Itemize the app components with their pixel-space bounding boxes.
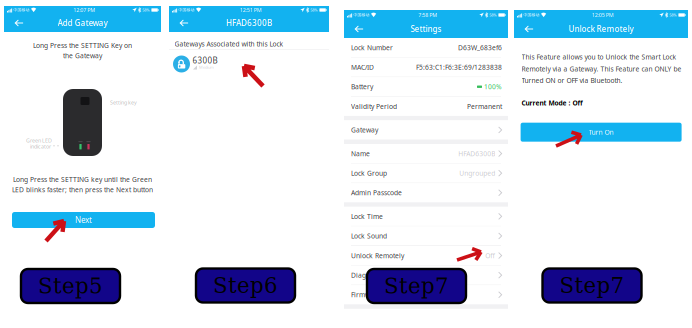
staticText: 58%: [142, 7, 149, 13]
staticText: Admin Passcode: [351, 188, 402, 197]
staticText: Medium: [199, 64, 214, 70]
staticText: Name: [351, 149, 370, 158]
staticText: indicator: [30, 143, 51, 150]
staticText: 12:51 PM: [240, 6, 262, 14]
staticText: Gateways Associated with this Lock: [174, 39, 283, 48]
staticText: Setting key: [110, 99, 137, 106]
staticText: Step6: [213, 273, 278, 298]
staticText: 中国移动: [354, 12, 370, 17]
staticText: F5:63:C1:F6:3E:69/1283838: [416, 63, 502, 72]
button[interactable]: Back: [349, 20, 369, 38]
staticText: Long Press the SETTING key until the Gre…: [13, 175, 152, 184]
staticText: 58%: [310, 7, 317, 13]
staticText: Green LED: [26, 137, 52, 144]
staticText: 中国移动: [524, 12, 540, 17]
staticText: Long Press the SETTING Key on: [33, 41, 132, 50]
staticText: Next: [75, 215, 92, 225]
button[interactable]: Firmware: [344, 285, 508, 304]
staticText: Firmware: [351, 290, 381, 299]
button[interactable]: Diagnosis: [344, 266, 508, 285]
staticText: 中国移动: [179, 7, 195, 12]
staticText: Step5: [38, 274, 103, 298]
staticText: Step7: [559, 273, 624, 298]
staticText: Remotely via a Gateway. This Feature can…: [521, 64, 681, 73]
staticText: 100%: [484, 82, 502, 91]
staticText: 中国移动: [14, 7, 30, 12]
staticText: Permanent: [467, 102, 502, 111]
staticText: Validity Period: [351, 102, 397, 111]
button[interactable]: Back: [174, 14, 194, 32]
button[interactable]: MAC/ID: [344, 58, 508, 77]
staticText: 7:58 PM: [418, 11, 437, 19]
staticText: Lock Sound: [351, 231, 387, 240]
button[interactable]: Next: [12, 212, 155, 228]
button[interactable]: Back: [9, 14, 29, 32]
staticText: Ungrouped: [459, 169, 495, 178]
staticText: Settings: [410, 24, 441, 34]
button[interactable]: Name: [344, 144, 508, 163]
button[interactable]: Battery: [344, 77, 508, 96]
button[interactable]: Back: [519, 20, 539, 38]
staticText: the Gateway: [63, 51, 102, 60]
staticText: 12:07 PM: [73, 6, 95, 14]
staticText: Step7: [384, 274, 449, 298]
staticText: MAC/ID: [351, 63, 374, 72]
button[interactable]: Lock Time: [344, 207, 508, 226]
button[interactable]: Lock Number: [344, 38, 508, 57]
button[interactable]: Lock Sound: [344, 226, 508, 245]
staticText: Battery: [351, 82, 373, 91]
button[interactable]: Turn On: [521, 123, 682, 142]
staticText: HFAD6300B: [458, 149, 495, 158]
staticText: Lock Number: [351, 43, 393, 52]
staticText: Current Mode : Off: [521, 99, 582, 107]
staticText: 6300B: [192, 55, 217, 66]
staticText: Turn On: [589, 128, 614, 137]
staticText: Off: [485, 251, 495, 260]
button[interactable]: Validity Period: [344, 97, 508, 116]
staticText: Unlock Remotely: [568, 24, 633, 34]
button[interactable]: Admin Passcode: [344, 183, 508, 202]
button[interactable]: Lock Group: [344, 164, 508, 183]
staticText: LED blinks faster; then press the Next b…: [12, 185, 153, 194]
staticText: HFAD6300B: [226, 18, 272, 28]
staticText: Lock Group: [351, 169, 387, 178]
staticText: 12:05 PM: [592, 11, 614, 19]
staticText: Unlock Remotely: [351, 251, 404, 260]
staticText: D63W_683ef6: [458, 43, 502, 52]
staticText: Add Gateway: [57, 18, 107, 28]
button[interactable]: 6300B: [169, 50, 329, 78]
button[interactable]: Unlock Remotely: [344, 246, 508, 265]
staticText: 58%: [489, 12, 496, 18]
staticText: This Feature allows you to Unlock the Sm…: [521, 53, 676, 61]
staticText: Turned ON or OFF via Bluetooth.: [521, 76, 622, 85]
staticText: 58%: [669, 12, 676, 18]
staticText: Gateway: [351, 125, 378, 134]
staticText: Diagnosis: [351, 271, 382, 280]
button[interactable]: Gateway: [344, 120, 508, 139]
staticText: Lock Time: [351, 212, 383, 221]
